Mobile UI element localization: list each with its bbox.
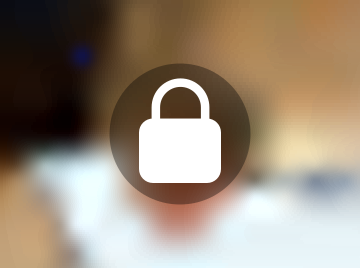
button[interactable]: Locked — tap to unlock [0, 0, 360, 268]
